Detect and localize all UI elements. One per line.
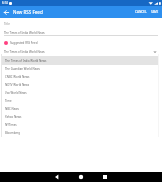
button[interactable]: CANCEL xyxy=(133,8,149,16)
button[interactable]: The Times of India World News xyxy=(0,48,162,56)
staticText: The Times of India World News xyxy=(4,50,153,54)
staticText: NDTV World News xyxy=(5,83,30,87)
staticText: Bloomberg xyxy=(5,131,20,135)
button[interactable]: Time xyxy=(2,97,158,105)
button[interactable]: Recents xyxy=(98,172,112,182)
button[interactable]: Back xyxy=(1,7,12,18)
button[interactable]: NYTimes xyxy=(2,121,158,129)
staticText: Yahoo News xyxy=(5,115,22,119)
staticText: CNBC World News xyxy=(5,75,30,79)
button[interactable]: CNBC World News xyxy=(2,73,158,81)
button[interactable]: Home xyxy=(74,172,88,182)
button[interactable]: The Times of India World News xyxy=(2,56,158,65)
button[interactable]: Suggested RSS Feed xyxy=(0,39,162,47)
staticText: Suggested RSS Feed xyxy=(10,41,38,45)
staticText: Title xyxy=(4,22,10,26)
staticText: Time xyxy=(5,99,12,103)
staticText: Vox World News xyxy=(5,91,27,95)
staticText: The Times of India World News xyxy=(5,59,47,63)
button[interactable]: Back xyxy=(50,172,64,182)
button[interactable]: NBC News xyxy=(2,105,158,113)
staticText: The Guardian World News xyxy=(5,67,40,71)
button[interactable]: Bloomberg xyxy=(2,129,158,137)
staticText: New RSS Feed xyxy=(13,9,43,15)
staticText: The Times of India World News xyxy=(4,31,45,35)
button[interactable]: The Guardian World News xyxy=(2,65,158,73)
staticText: NBC News xyxy=(5,107,19,111)
staticText: SAVE xyxy=(151,10,159,14)
button[interactable]: NDTV World News xyxy=(2,81,158,89)
staticText: 6:14 xyxy=(2,1,8,5)
staticText: NYTimes xyxy=(5,123,17,127)
button[interactable]: Vox World News xyxy=(2,89,158,97)
button[interactable]: Yahoo News xyxy=(2,113,158,121)
staticText: CANCEL xyxy=(135,10,147,14)
button[interactable]: SAVE xyxy=(149,8,162,16)
